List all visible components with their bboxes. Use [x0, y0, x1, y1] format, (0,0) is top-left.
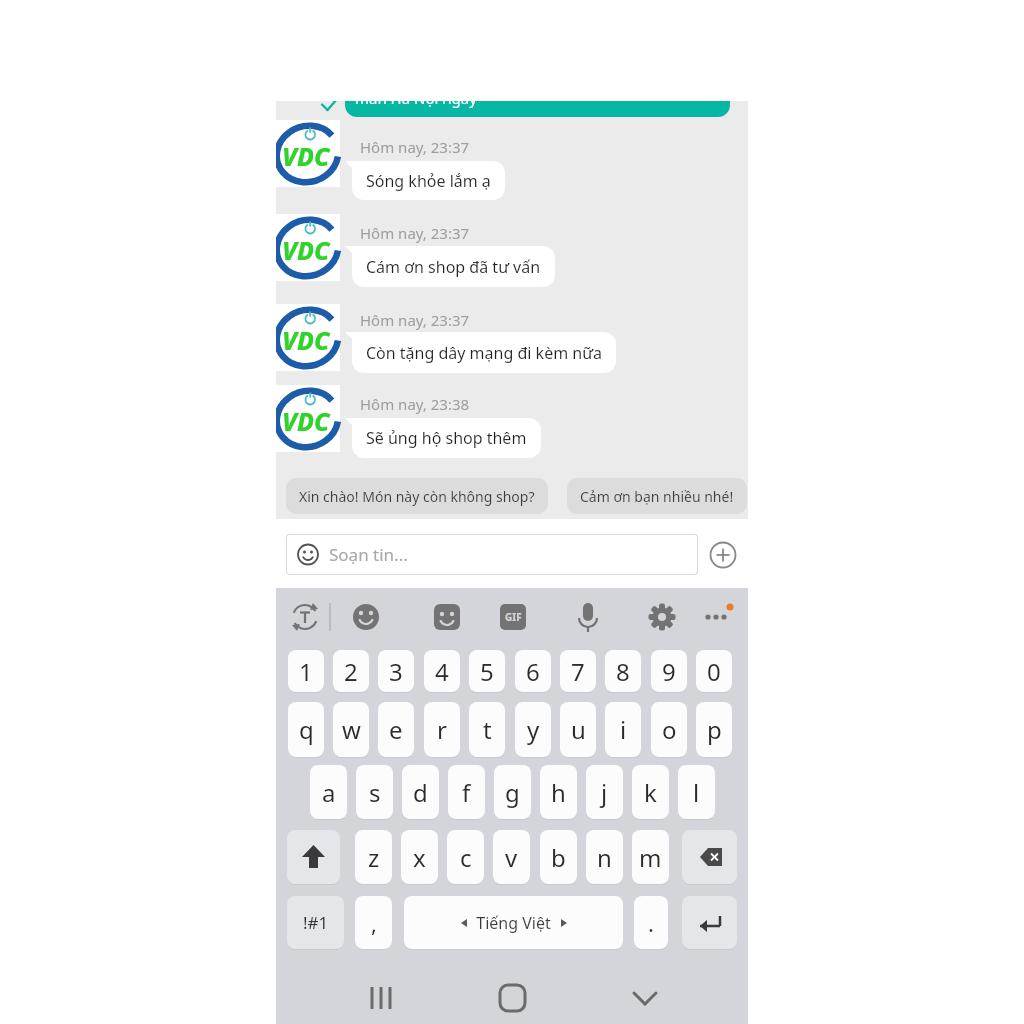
- button[interactable]: Sóng khỏe lắm ạ: [352, 161, 505, 200]
- button[interactable]: m: [632, 830, 669, 884]
- button[interactable]: s: [356, 765, 393, 819]
- button[interactable]: [287, 830, 340, 884]
- staticText: Cám ơn shop đã tư vấn: [366, 256, 541, 278]
- button[interactable]: GIF: [500, 604, 526, 630]
- button[interactable]: n: [586, 830, 623, 884]
- staticText: VDC: [282, 404, 330, 438]
- button[interactable]: Còn tặng dây mạng đi kèm nữa: [352, 332, 616, 373]
- button[interactable]: f: [448, 765, 485, 819]
- staticText: 9: [662, 655, 676, 688]
- staticText: Soạn tin...: [329, 543, 408, 566]
- staticText: r: [437, 713, 447, 746]
- button[interactable]: 4: [424, 650, 460, 692]
- button[interactable]: d: [402, 765, 439, 819]
- staticText: 2: [344, 655, 358, 688]
- button[interactable]: t: [469, 702, 505, 757]
- button[interactable]: 5: [469, 650, 505, 692]
- button[interactable]: [682, 830, 737, 884]
- staticText: g: [505, 776, 520, 809]
- button[interactable]: l: [678, 765, 715, 819]
- button[interactable]: màn Hà Nội ngay: [345, 101, 730, 117]
- staticText: Hôm nay, 23:37: [360, 310, 470, 330]
- button[interactable]: .: [634, 896, 668, 949]
- staticText: Cảm ơn bạn nhiều nhé!: [580, 487, 734, 506]
- button[interactable]: 7: [560, 650, 596, 692]
- button[interactable]: 0: [696, 650, 732, 692]
- staticText: VDC: [282, 233, 330, 267]
- button[interactable]: !#1: [287, 896, 344, 949]
- button[interactable]: Soạn tin...: [286, 534, 698, 575]
- staticText: p: [707, 713, 722, 746]
- staticText: 5: [480, 655, 494, 688]
- button[interactable]: b: [540, 830, 577, 884]
- button[interactable]: 9: [651, 650, 687, 692]
- button[interactable]: u: [560, 702, 596, 757]
- button[interactable]: h: [540, 765, 577, 819]
- staticText: u: [571, 713, 586, 746]
- button[interactable]: j: [586, 765, 623, 819]
- button[interactable]: k: [632, 765, 669, 819]
- button[interactable]: Tiếng Việt: [404, 896, 623, 949]
- staticText: m: [639, 841, 662, 874]
- staticText: f: [462, 776, 471, 809]
- button[interactable]: q: [288, 702, 324, 757]
- staticText: l: [693, 776, 700, 809]
- staticText: z: [368, 841, 380, 874]
- staticText: s: [369, 776, 381, 809]
- staticText: i: [620, 713, 627, 746]
- button[interactable]: r: [424, 702, 460, 757]
- staticText: Hôm nay, 23:37: [360, 223, 470, 243]
- staticText: Còn tặng dây mạng đi kèm nữa: [366, 342, 602, 364]
- staticText: v: [505, 841, 518, 874]
- staticText: Sẽ ủng hộ shop thêm: [366, 427, 527, 449]
- button[interactable]: 6: [515, 650, 551, 692]
- staticText: d: [413, 776, 428, 809]
- button[interactable]: w: [333, 702, 369, 757]
- button[interactable]: z: [355, 830, 392, 884]
- staticText: Xin chào! Món này còn không shop?: [299, 487, 535, 506]
- staticText: GIF: [505, 610, 522, 624]
- staticText: 8: [616, 655, 630, 688]
- staticText: x: [413, 841, 426, 874]
- staticText: VDC: [282, 139, 330, 173]
- staticText: ,: [371, 908, 377, 938]
- staticText: màn Hà Nội ngay: [355, 101, 477, 108]
- button[interactable]: v: [493, 830, 530, 884]
- staticText: k: [644, 776, 657, 809]
- button[interactable]: Cảm ơn bạn nhiều nhé!: [567, 478, 747, 514]
- staticText: c: [460, 841, 472, 874]
- staticText: a: [322, 776, 336, 809]
- button[interactable]: ,: [355, 896, 392, 949]
- staticText: 0: [707, 655, 721, 688]
- button[interactable]: Sẽ ủng hộ shop thêm: [352, 418, 541, 458]
- button[interactable]: 1: [288, 650, 324, 692]
- staticText: q: [299, 713, 314, 746]
- button[interactable]: Cám ơn shop đã tư vấn: [352, 246, 555, 287]
- button[interactable]: g: [494, 765, 531, 819]
- staticText: !#1: [303, 911, 329, 934]
- button[interactable]: Xin chào! Món này còn không shop?: [286, 478, 548, 514]
- button[interactable]: c: [447, 830, 484, 884]
- staticText: y: [527, 713, 540, 746]
- staticText: 7: [571, 655, 585, 688]
- button[interactable]: e: [378, 702, 414, 757]
- button[interactable]: x: [401, 830, 438, 884]
- button[interactable]: a: [310, 765, 347, 819]
- button[interactable]: p: [696, 702, 732, 757]
- button[interactable]: 2: [333, 650, 369, 692]
- staticText: 6: [526, 655, 540, 688]
- staticText: .: [648, 908, 654, 938]
- button[interactable]: [682, 896, 737, 949]
- button[interactable]: 8: [605, 650, 641, 692]
- staticText: j: [601, 776, 608, 809]
- staticText: n: [597, 841, 612, 874]
- button[interactable]: o: [651, 702, 687, 757]
- staticText: Hôm nay, 23:37: [360, 137, 470, 157]
- staticText: 4: [435, 655, 449, 688]
- button[interactable]: [710, 542, 736, 568]
- button[interactable]: i: [605, 702, 641, 757]
- button[interactable]: 3: [378, 650, 414, 692]
- button[interactable]: y: [515, 702, 551, 757]
- staticText: o: [662, 713, 677, 746]
- staticText: b: [551, 841, 566, 874]
